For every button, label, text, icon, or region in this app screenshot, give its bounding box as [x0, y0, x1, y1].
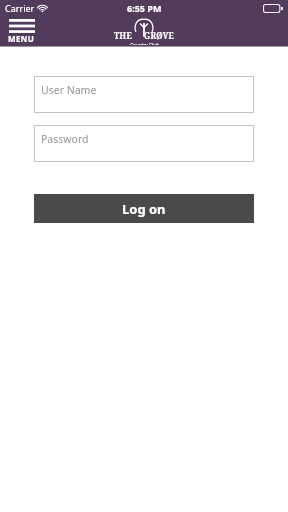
staticText: Log on: [122, 200, 166, 218]
staticText: Carrier: [5, 2, 35, 14]
staticText: THE: [114, 30, 132, 41]
staticText: GRØVE: [144, 30, 175, 41]
staticText: Password: [41, 132, 89, 146]
button[interactable]: THE: [110, 19, 178, 45]
button[interactable]: Menu: [8, 19, 35, 44]
button[interactable]: User Name: [34, 76, 254, 113]
button[interactable]: Log on: [34, 194, 254, 223]
staticText: 6:55 PM: [127, 2, 162, 14]
staticText: Country Club: [130, 42, 159, 45]
button[interactable]: Password: [34, 125, 254, 162]
staticText: MENU: [8, 33, 35, 44]
staticText: User Name: [41, 83, 97, 97]
